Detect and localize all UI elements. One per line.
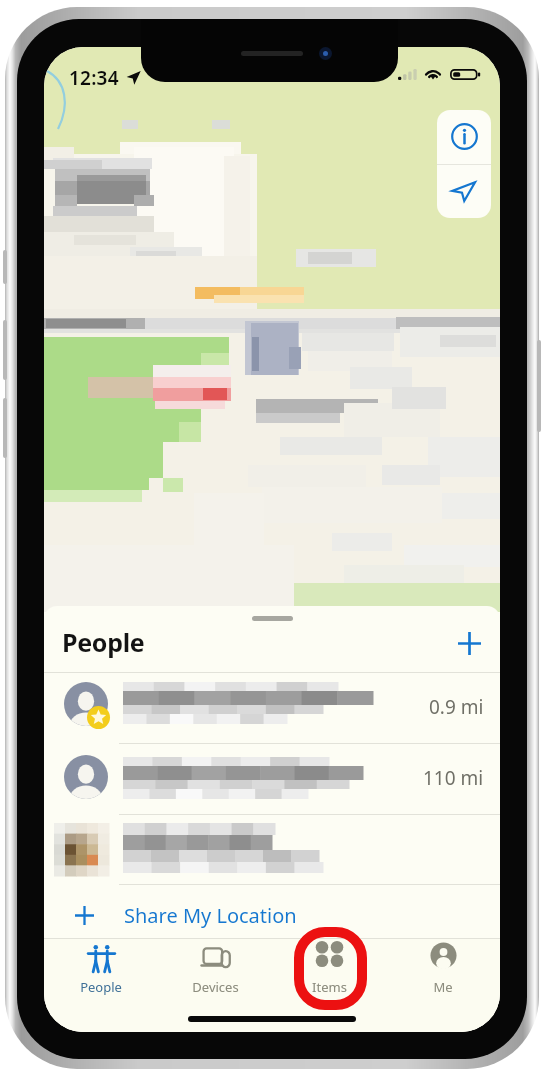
button[interactable]: Add person — [450, 624, 488, 662]
staticText: Share My Location — [124, 902, 297, 929]
button[interactable] — [44, 815, 500, 884]
button[interactable]: Me — [386, 939, 500, 999]
staticText: Devices — [192, 978, 239, 996]
button[interactable]: Share My Location — [44, 885, 500, 938]
button[interactable]: Map information — [437, 110, 491, 164]
staticText: 110 mi — [423, 765, 484, 791]
button[interactable]: People — [44, 939, 158, 999]
button[interactable]: Items — [272, 939, 386, 999]
button[interactable]: Center on my location — [437, 165, 491, 218]
staticText: People — [62, 625, 145, 659]
staticText: Me — [433, 978, 453, 996]
staticText: 0.9 mi — [429, 694, 484, 720]
staticText: 12:34 — [69, 65, 119, 91]
button[interactable]: 110 mi — [44, 744, 500, 814]
button[interactable]: Devices — [158, 939, 272, 999]
button[interactable]: 0.9 mi — [44, 673, 500, 743]
staticText: People — [80, 978, 122, 996]
staticText: Items — [312, 978, 347, 996]
